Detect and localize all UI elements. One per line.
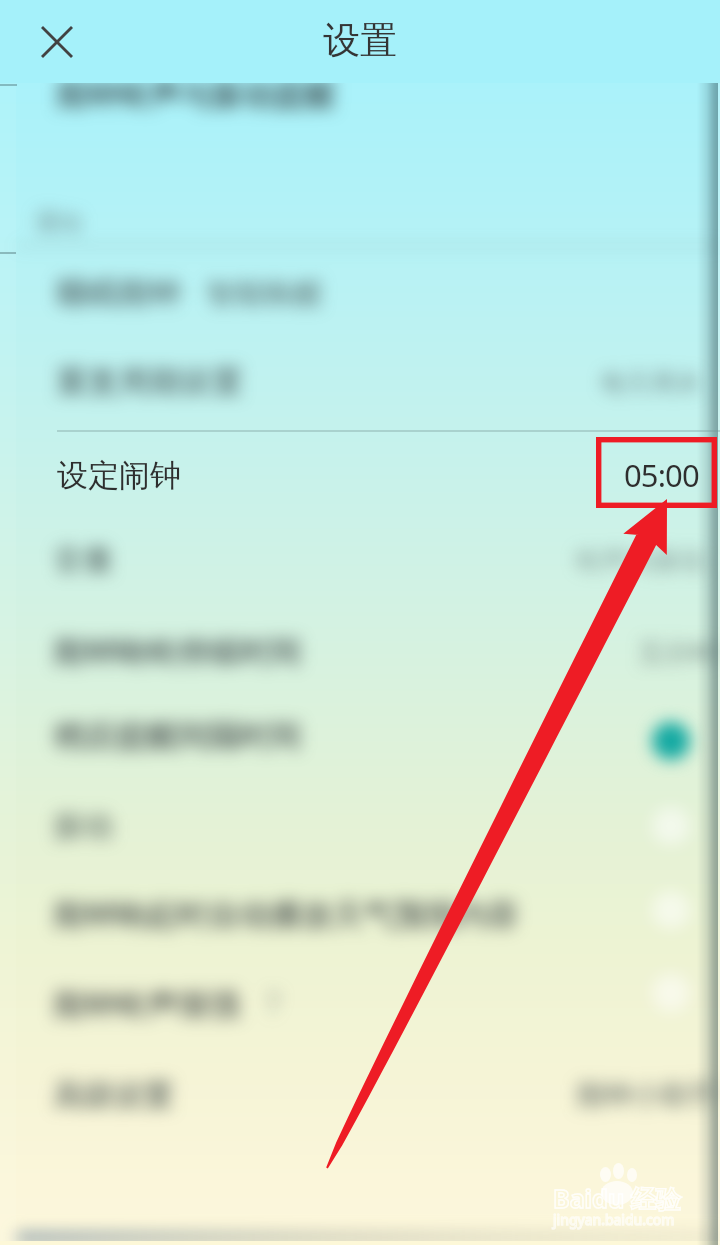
staticText: 五分钟 xyxy=(638,637,716,670)
staticText: 音量 xyxy=(53,542,113,580)
staticText: 睡眠闹钟 xyxy=(56,274,180,313)
staticText: 设定闹钟 xyxy=(57,456,181,495)
staticText: 闹钟铃声渐强 xyxy=(53,986,239,1025)
staticText: jingyan.baidu.com xyxy=(553,1210,675,1229)
staticText: 稍后提醒间隔时间 xyxy=(53,717,301,756)
staticText: 智能唤醒 xyxy=(206,276,322,313)
staticText: 铃声与振动 xyxy=(575,545,705,578)
staticText: 闹钟小助手 xyxy=(576,1078,716,1113)
staticText: 重复周期设置 xyxy=(56,363,242,402)
button[interactable]: Close xyxy=(23,8,91,76)
staticText: 闹钟铃声与振动提醒 xyxy=(56,76,335,115)
staticText: 高级设置 xyxy=(53,1077,173,1115)
staticText: 闹钟响起时自动播放天气预报内容 xyxy=(53,896,518,935)
staticText: ? xyxy=(266,982,281,1023)
staticText: 闹钟响铃持续时间 xyxy=(53,633,301,672)
staticText: Baidu 经验 xyxy=(553,1181,681,1215)
staticText: 通知 xyxy=(34,208,82,238)
staticText: 05:00 xyxy=(624,454,699,496)
button[interactable]: 设定闹钟 xyxy=(0,431,720,519)
staticText: 每天周末 xyxy=(600,368,700,399)
staticText: 振动 xyxy=(53,808,113,846)
staticText: 设置 xyxy=(323,17,397,64)
